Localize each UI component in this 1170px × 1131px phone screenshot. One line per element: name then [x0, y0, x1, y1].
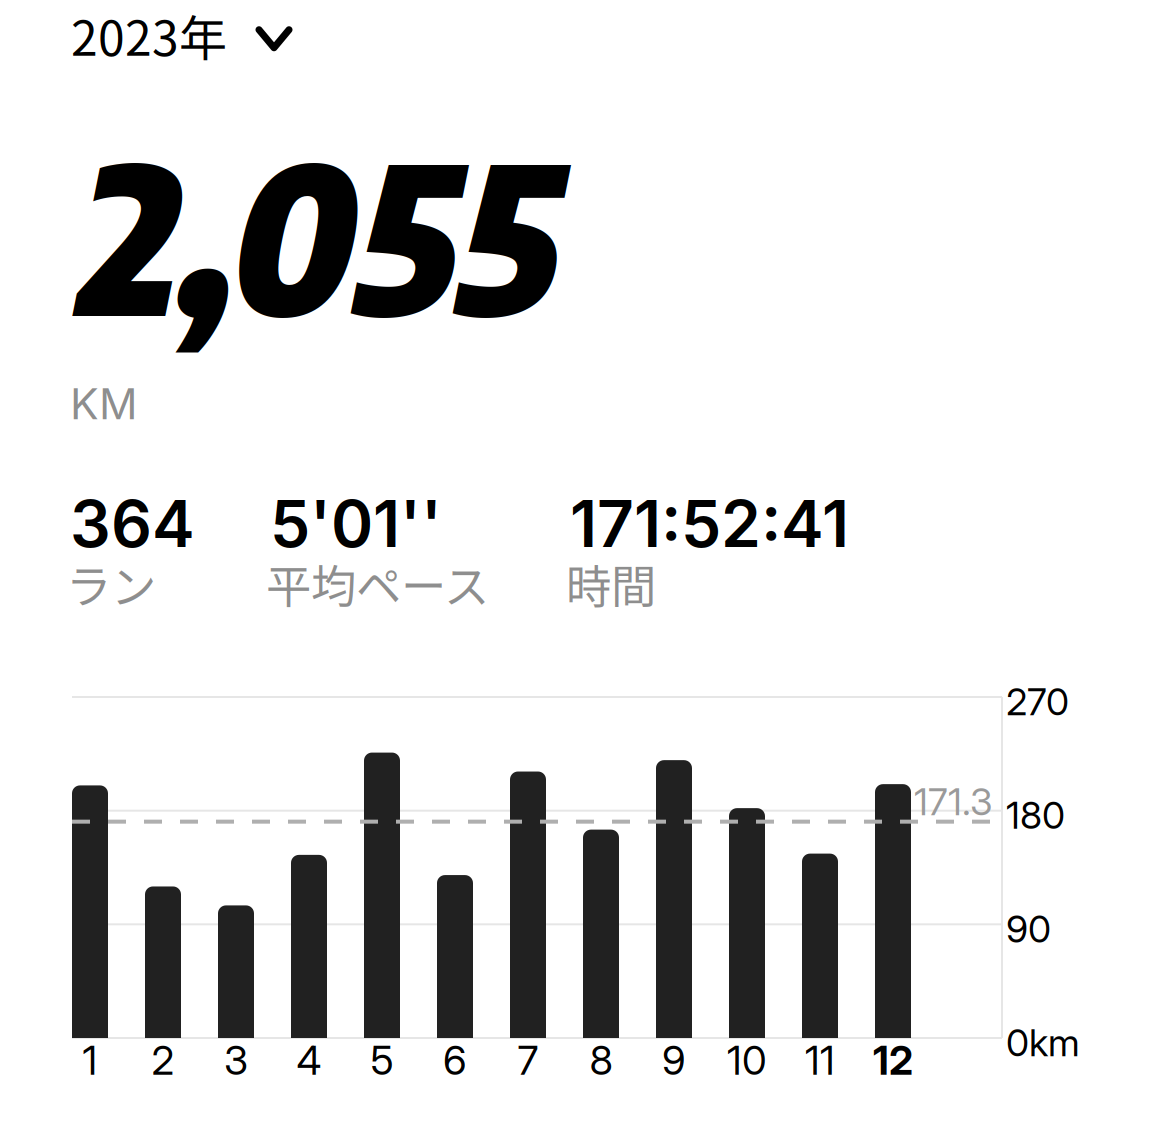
- staticText: 5'01'': [270, 485, 442, 562]
- staticText: 9: [662, 1036, 686, 1084]
- staticText: ラン: [66, 551, 156, 617]
- staticText: 1: [82, 1036, 97, 1084]
- staticText: 2: [151, 1036, 174, 1084]
- staticText: 12: [873, 1036, 913, 1084]
- staticText: 6: [443, 1036, 467, 1084]
- button[interactable]: 2023年: [71, 0, 292, 69]
- staticText: 5: [370, 1036, 393, 1084]
- staticText: 171:52:41: [570, 485, 849, 562]
- staticText: 7: [517, 1036, 538, 1084]
- staticText: 4: [296, 1036, 321, 1084]
- staticText: 10: [727, 1036, 767, 1084]
- staticText: 8: [589, 1036, 612, 1084]
- staticText: KM: [70, 378, 138, 430]
- staticText: 時間: [566, 551, 656, 617]
- staticText: 180: [1006, 793, 1065, 838]
- staticText: 0km: [1006, 1020, 1080, 1065]
- staticText: 171.3: [914, 779, 993, 824]
- staticText: 3: [224, 1036, 248, 1084]
- staticText: 2,055: [69, 106, 549, 361]
- staticText: 364: [70, 485, 195, 562]
- staticText: 2023年: [71, 0, 227, 69]
- staticText: 11: [805, 1036, 835, 1084]
- staticText: 270: [1006, 679, 1069, 724]
- staticText: 平均ペース: [266, 551, 489, 617]
- staticText: 90: [1006, 906, 1051, 951]
